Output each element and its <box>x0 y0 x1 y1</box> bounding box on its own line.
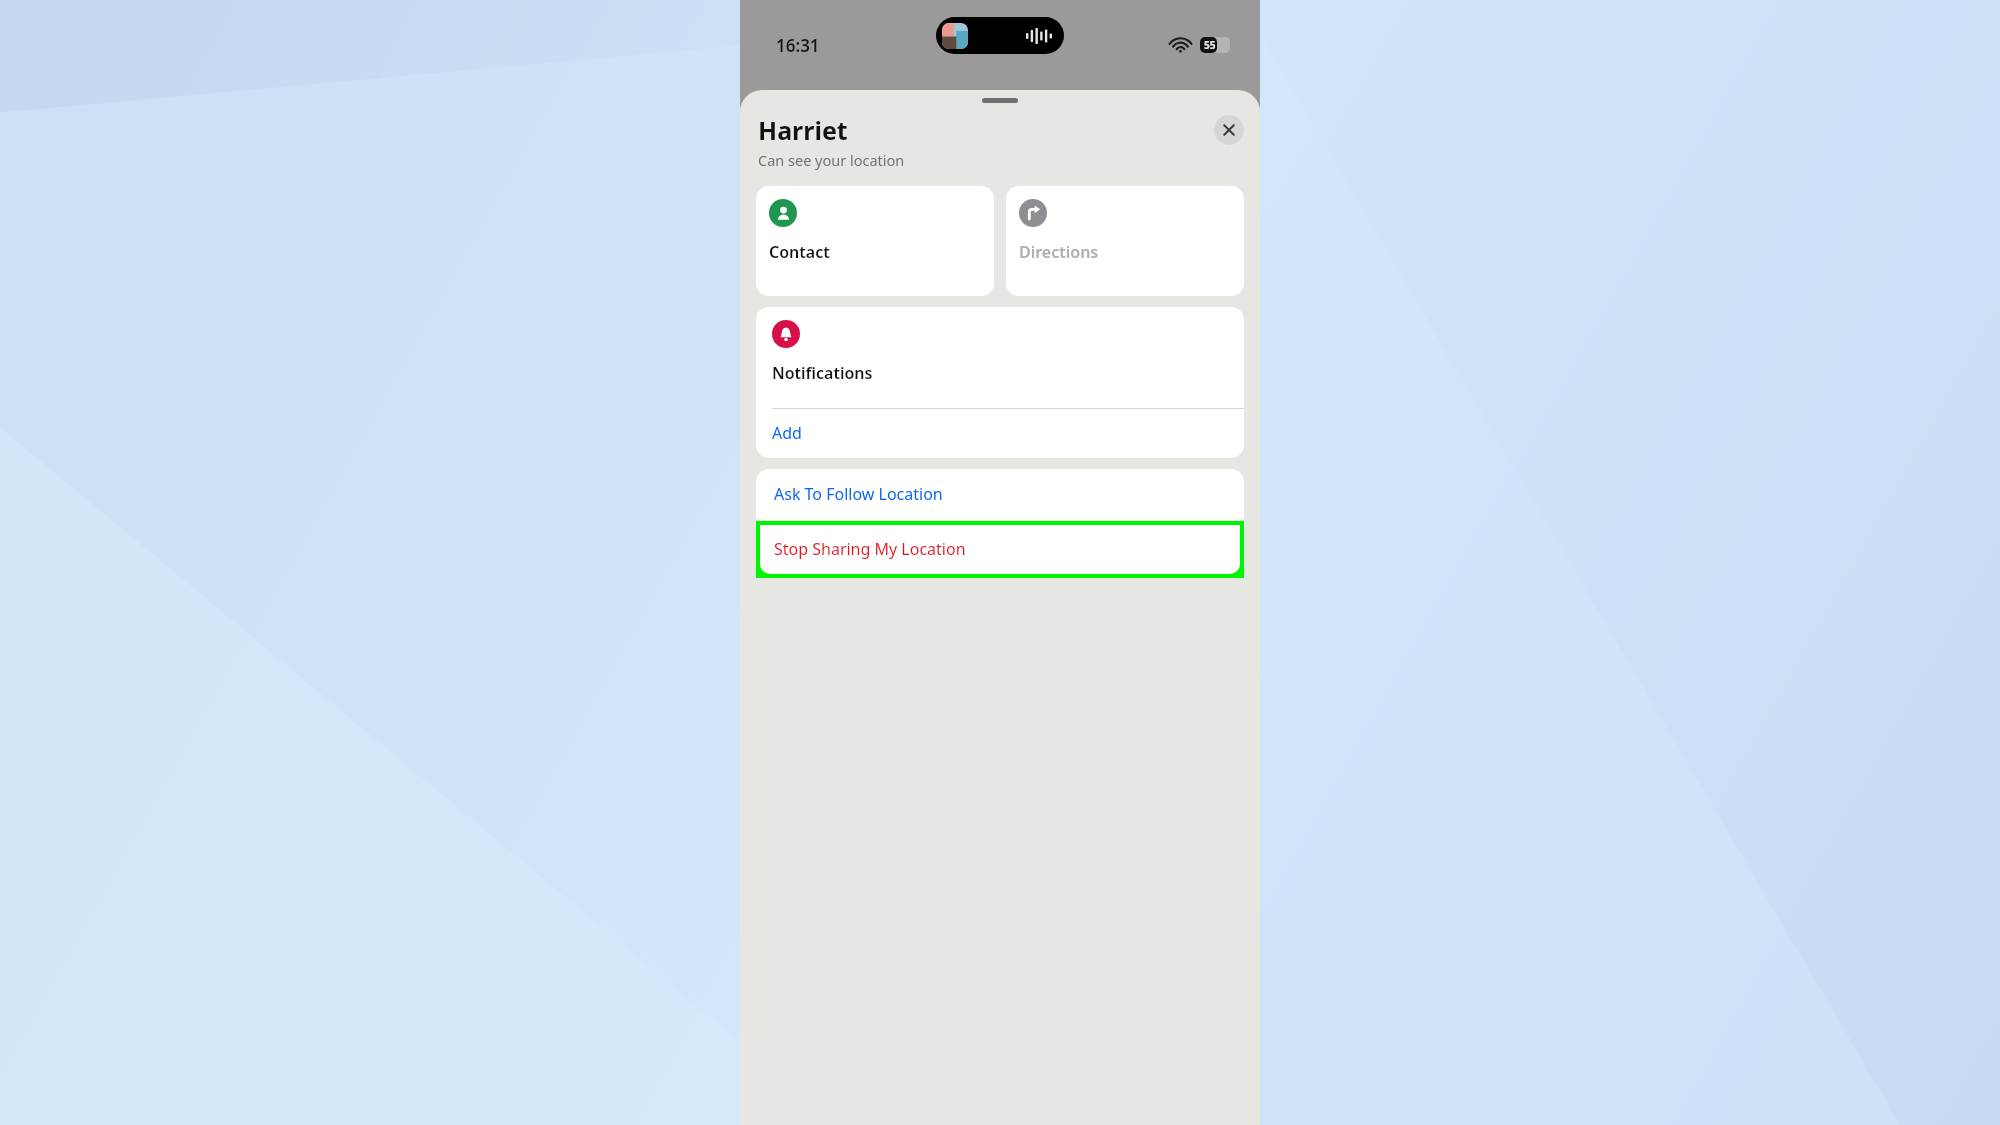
staticText: Stop Sharing My Location <box>774 538 966 560</box>
button[interactable]: Contact <box>756 186 994 296</box>
button[interactable]: Notifications <box>756 307 1244 408</box>
button[interactable]: Directions <box>1006 186 1244 296</box>
staticText: Contact <box>769 241 830 263</box>
button[interactable]: Stop Sharing My Location <box>760 525 1240 574</box>
button[interactable]: Close <box>1214 115 1244 145</box>
staticText: Harriet <box>758 113 848 147</box>
staticText: Ask To Follow Location <box>774 483 943 505</box>
staticText: Add <box>772 422 802 444</box>
button[interactable]: Add <box>756 409 1244 458</box>
staticText: Directions <box>1019 241 1099 263</box>
staticText: 55 <box>1204 38 1216 52</box>
staticText: Notifications <box>772 362 873 384</box>
button[interactable]: Ask To Follow Location <box>756 469 1244 520</box>
staticText: 16:31 <box>776 34 820 57</box>
staticText: Can see your location <box>758 150 905 170</box>
